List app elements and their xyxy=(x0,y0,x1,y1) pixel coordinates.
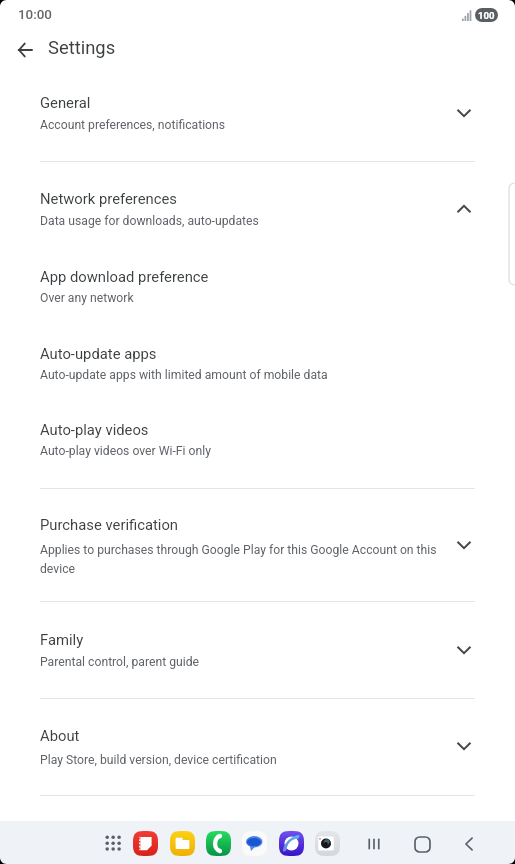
button[interactable]: Internet xyxy=(279,831,304,856)
button[interactable] xyxy=(0,617,515,671)
staticText: About xyxy=(40,727,80,744)
staticText: Data usage for downloads, auto-updates xyxy=(40,214,259,228)
button[interactable]: Samsung Notes xyxy=(133,831,158,856)
staticText: App download preference xyxy=(40,268,209,285)
button[interactable]: Back xyxy=(449,824,489,864)
button[interactable] xyxy=(0,502,515,578)
staticText: 10:00 xyxy=(18,7,52,23)
button[interactable]: Phone xyxy=(206,831,231,856)
staticText: Auto-update apps xyxy=(40,345,157,362)
staticText: Family xyxy=(40,631,84,648)
button[interactable] xyxy=(0,80,515,134)
button[interactable]: Messages xyxy=(242,831,267,856)
button[interactable] xyxy=(0,713,515,767)
button[interactable] xyxy=(0,176,515,230)
button[interactable] xyxy=(0,254,515,308)
staticText: General xyxy=(40,94,91,111)
staticText: Over any network xyxy=(40,291,134,305)
staticText: Auto-play videos xyxy=(40,421,149,438)
button[interactable]: All apps xyxy=(99,829,127,857)
staticText: Auto-play videos over Wi-Fi only xyxy=(40,444,211,458)
staticText: Applies to purchases through Google Play… xyxy=(40,543,438,576)
staticText: Settings xyxy=(48,37,116,59)
staticText: Account preferences, notifications xyxy=(40,118,226,132)
staticText: 100 xyxy=(478,10,495,21)
staticText: Parental control, parent guide xyxy=(40,655,200,669)
button[interactable]: Back xyxy=(4,29,45,70)
button[interactable]: My Files xyxy=(170,831,195,856)
staticText: Network preferences xyxy=(40,190,177,207)
button[interactable] xyxy=(0,407,515,461)
button[interactable]: Camera xyxy=(315,831,340,856)
staticText: Purchase verification xyxy=(40,516,179,533)
button[interactable]: Recents xyxy=(354,824,394,864)
button[interactable] xyxy=(0,331,515,385)
button[interactable]: Home xyxy=(402,824,442,864)
staticText: Auto-update apps with limited amount of … xyxy=(40,368,328,382)
staticText: Play Store, build version, device certif… xyxy=(40,753,277,767)
